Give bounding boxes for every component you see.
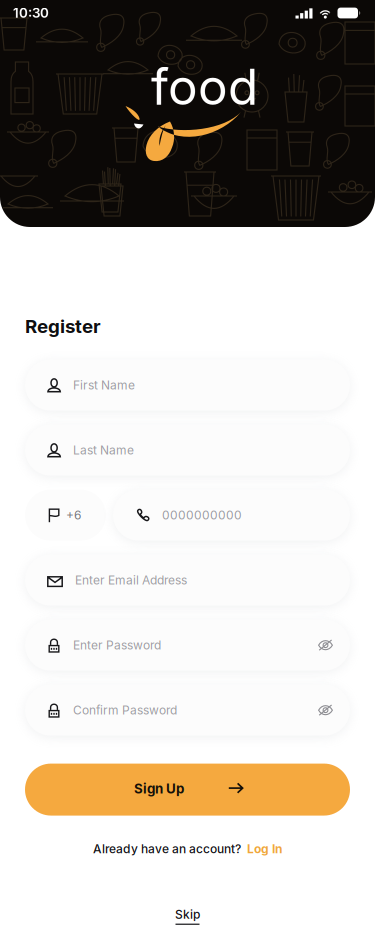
staticText: Already have an account? [93,842,241,856]
button[interactable]: Confirm Password [25,685,350,736]
staticText: Last Name [73,443,134,457]
button[interactable]: Enter Password [25,620,350,671]
staticText: First Name [73,378,135,392]
staticText: Sign Up [134,781,184,797]
button[interactable]: Enter Email Address [25,555,350,606]
staticText: +6 [66,508,81,522]
staticText: Log In [247,842,282,856]
staticText: Enter Email Address [75,573,187,587]
staticText: 10:30 [13,5,49,21]
button[interactable]: Skip [175,907,200,925]
button[interactable]: First Name [25,360,350,411]
staticText: food [151,57,258,117]
staticText: Register [25,315,101,338]
button[interactable]: Log In [247,842,282,856]
button[interactable]: Last Name [25,425,350,476]
button[interactable]: 0000000000 [113,490,350,541]
staticText: Confirm Password [73,703,177,717]
button[interactable]: Sign Up [25,764,350,816]
button[interactable]: +6 [25,490,106,541]
staticText: Enter Password [73,638,161,652]
staticText: Skip [175,907,200,922]
staticText: 0000000000 [162,508,242,522]
